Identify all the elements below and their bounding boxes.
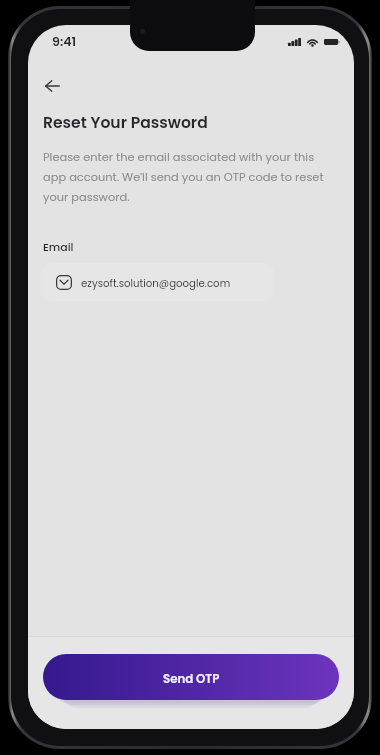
button[interactable]: Back [33,67,71,105]
button[interactable]: Send OTP [43,654,339,700]
staticText: Please enter the email associated with y… [43,149,335,205]
staticText: Reset Your Password [43,112,208,134]
staticText: 9:41 [52,33,77,51]
button[interactable]: ezysoft.solution@google.com [42,263,274,301]
staticText: Send OTP [163,671,220,688]
staticText: ezysoft.solution@google.com [81,276,231,290]
staticText: Email [43,239,74,254]
